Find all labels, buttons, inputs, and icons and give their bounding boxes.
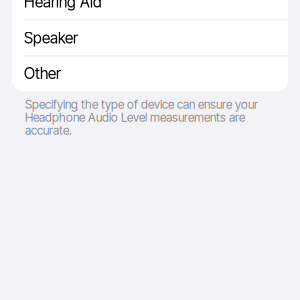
staticText: Speaker bbox=[24, 29, 78, 47]
button[interactable]: Hearing Aid bbox=[12, 0, 288, 20]
button[interactable]: Other bbox=[12, 56, 288, 91]
staticText: Hearing Aid bbox=[24, 0, 102, 11]
staticText: Headphone Audio Level measurements are bbox=[25, 110, 245, 125]
staticText: accurate. bbox=[25, 123, 72, 138]
staticText: Specifying the type of device can ensure… bbox=[25, 97, 258, 112]
staticText: Other bbox=[24, 64, 61, 83]
button[interactable]: Speaker bbox=[12, 20, 288, 56]
